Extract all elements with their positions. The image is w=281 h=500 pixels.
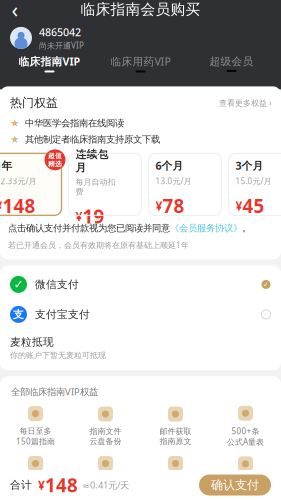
staticText: 支	[13, 308, 24, 321]
staticText: ★	[10, 133, 20, 145]
staticText: ¥	[75, 208, 82, 224]
button[interactable]: 《会员服务协议》	[170, 222, 242, 234]
staticText: 临床指南VIP	[18, 54, 80, 68]
staticText: 13.0元/月	[155, 176, 191, 186]
staticText: 尚未开通VIP	[39, 40, 84, 51]
staticText: 若已开通会员，会员有效期将在原有基础上顺延1年	[8, 240, 189, 250]
staticText: 200+条	[91, 476, 119, 487]
staticText: 热门权益	[10, 95, 58, 110]
button[interactable]: ✓	[0, 275, 281, 293]
staticText: 4865042	[39, 25, 81, 39]
staticText: 3个月	[235, 158, 263, 173]
staticText: 你的账户下暂无麦粒可抵现	[10, 350, 106, 360]
button[interactable]: 1年	[0, 153, 61, 215]
staticText: ★	[10, 117, 20, 129]
staticText: 148	[2, 193, 35, 218]
staticText: 200+条	[21, 476, 49, 487]
staticText: 精选	[48, 160, 62, 168]
staticText: 《会员服务协议》	[170, 222, 242, 234]
staticText: 148	[45, 473, 78, 497]
staticText: 每日至多	[19, 426, 51, 436]
staticText: 麦粒抵现	[10, 335, 54, 348]
staticText: 公式A量表	[227, 436, 264, 447]
staticText: 临床用药VIP	[110, 54, 170, 68]
staticText: 1年	[0, 158, 12, 173]
button[interactable]: 临床用药VIP	[95, 52, 186, 74]
staticText: 78	[162, 193, 184, 218]
staticText: 合计	[10, 478, 32, 491]
staticText: ¥	[0, 198, 2, 214]
staticText: 500+条	[231, 426, 259, 436]
staticText: 19	[82, 204, 104, 229]
staticText: 连续包月	[75, 148, 108, 174]
staticText: 超级会员	[209, 55, 253, 68]
staticText: 。	[242, 222, 251, 234]
button[interactable]: 超级会员	[186, 52, 277, 74]
staticText: 45	[242, 193, 264, 218]
staticText: 临床指南会员购买	[80, 0, 200, 18]
staticText: 每月自动扣费	[75, 177, 115, 197]
staticText: 查看更多权益 ›	[219, 97, 271, 108]
button[interactable]: 6个月	[148, 153, 221, 215]
staticText: 邮件获取	[159, 426, 191, 436]
staticText: 确认支付	[211, 478, 259, 492]
staticText: 全部临床指南VIP权益	[11, 385, 98, 398]
button[interactable]: 查看更多权益 ›	[219, 97, 271, 108]
button[interactable]: 3个月	[228, 153, 281, 215]
staticText: 指南文件	[89, 426, 121, 436]
staticText: 疾病搜码	[229, 476, 261, 486]
staticText: ✓	[13, 278, 23, 291]
staticText: 6个月	[155, 158, 183, 173]
staticText: 其他制定者临床指南支持原文下载	[25, 134, 160, 145]
button[interactable]: 连续包月	[68, 153, 141, 215]
button[interactable]: 确认支付	[199, 474, 271, 495]
staticText: ✓	[263, 281, 269, 288]
staticText: 指南原文	[159, 436, 191, 446]
staticText: ¥	[155, 198, 162, 214]
staticText: 云盘备份	[89, 436, 121, 446]
staticText: ≈0.41元/天	[82, 479, 129, 491]
button[interactable]: 支	[0, 305, 281, 323]
button[interactable]: 返回	[0, 0, 30, 21]
staticText: ¥	[38, 477, 45, 493]
button[interactable]: 临床指南VIP	[4, 52, 95, 74]
staticText: 超值	[48, 152, 62, 160]
staticText: 微信支付	[35, 278, 79, 291]
staticText: ‹	[11, 0, 18, 23]
staticText: 点击确认支付并付款视为您已阅读并同意	[8, 222, 170, 234]
staticText: 15.0元/月	[235, 176, 271, 186]
staticText: 12.33元/月	[0, 176, 36, 186]
staticText: 150篇指南	[16, 436, 55, 447]
staticText: 支付宝支付	[35, 308, 90, 321]
staticText: ¥	[235, 198, 242, 214]
staticText: 中华医学会指南在线阅读	[25, 117, 124, 129]
